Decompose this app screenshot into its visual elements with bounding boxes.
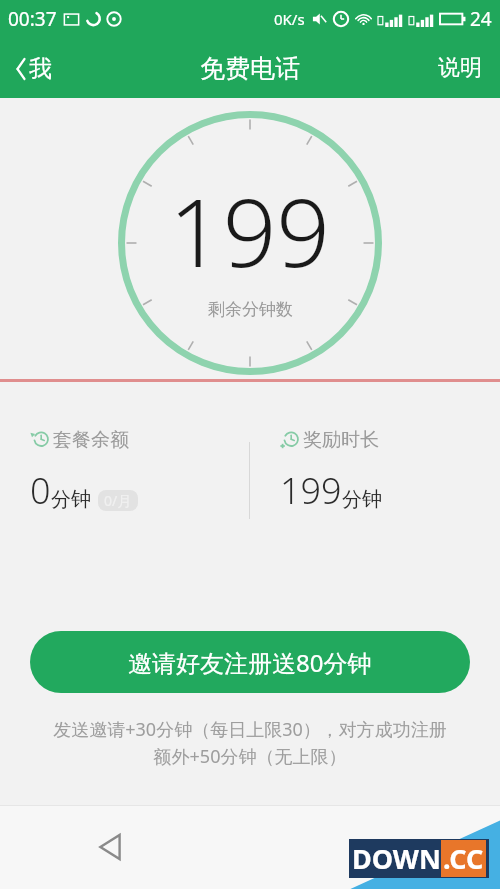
- staticText: 分钟: [51, 487, 91, 512]
- staticText: 套餐余额: [53, 428, 129, 452]
- staticText: 剩余分钟数: [208, 299, 293, 320]
- staticText: 发送邀请+30分钟（每日上限30），对方成功注册 额外+50分钟（无上限）: [20, 717, 480, 769]
- staticText: 说明: [438, 54, 482, 82]
- staticText: 分钟: [342, 487, 382, 512]
- staticText: 199: [169, 167, 331, 295]
- button[interactable]: 说明: [420, 44, 500, 92]
- staticText: .CC: [443, 840, 484, 877]
- staticText: 奖励时长: [303, 428, 379, 452]
- button[interactable]: 我: [0, 46, 68, 91]
- staticText: 24: [470, 6, 492, 32]
- button[interactable]: Back: [83, 820, 137, 874]
- staticText: 免费电话: [200, 53, 300, 84]
- staticText: 0K/s: [274, 9, 305, 29]
- staticText: 00:37: [8, 6, 57, 32]
- staticText: DOWN: [352, 840, 441, 877]
- button[interactable]: 邀请好友注册送80分钟: [30, 631, 470, 693]
- staticText: 0/月: [104, 491, 132, 510]
- staticText: 邀请好友注册送80分钟: [128, 646, 372, 679]
- staticText: 199: [280, 466, 342, 515]
- staticText: 0: [30, 466, 51, 515]
- staticText: 我: [29, 54, 52, 83]
